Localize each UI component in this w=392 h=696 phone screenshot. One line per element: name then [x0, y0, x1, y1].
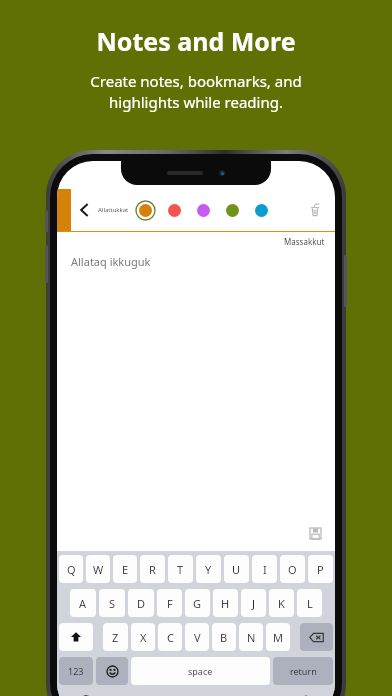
- staticText: D: [137, 596, 146, 611]
- staticText: N: [247, 630, 256, 645]
- staticText: F: [167, 596, 173, 611]
- button[interactable]: L: [297, 589, 322, 617]
- staticText: W: [93, 562, 104, 577]
- button[interactable]: T: [168, 555, 193, 583]
- staticText: B: [220, 630, 228, 645]
- button[interactable]: A: [70, 589, 96, 617]
- button[interactable]: Colour 2: [163, 199, 185, 221]
- staticText: S: [109, 596, 116, 611]
- button[interactable]: G: [185, 589, 210, 617]
- staticText: U: [232, 562, 241, 577]
- button[interactable]: Emoji: [96, 657, 128, 685]
- button[interactable]: return: [273, 657, 333, 685]
- button[interactable]: E: [113, 555, 137, 583]
- button[interactable]: S: [99, 589, 125, 617]
- button[interactable]: Save: [305, 523, 325, 543]
- staticText: space: [188, 665, 213, 677]
- button[interactable]: K: [269, 589, 294, 617]
- button[interactable]: U: [224, 555, 249, 583]
- button[interactable]: Allattukkat: [98, 206, 129, 214]
- button[interactable]: Y: [196, 555, 221, 583]
- staticText: E: [122, 562, 129, 577]
- staticText: L: [307, 596, 313, 611]
- button[interactable]: R: [140, 555, 165, 583]
- button[interactable]: X: [131, 623, 155, 651]
- staticText: J: [252, 596, 256, 611]
- staticText: K: [278, 596, 285, 611]
- button[interactable]: D: [128, 589, 154, 617]
- button[interactable]: Backspace: [300, 623, 333, 651]
- staticText: T: [177, 562, 184, 577]
- staticText: Y: [205, 562, 212, 577]
- staticText: G: [193, 596, 202, 611]
- button[interactable]: N: [239, 623, 263, 651]
- button[interactable]: M: [266, 623, 290, 651]
- button[interactable]: Back: [75, 200, 95, 220]
- button[interactable]: Colour 1: [134, 199, 156, 221]
- button[interactable]: space: [131, 657, 270, 685]
- button[interactable]: Colour 3: [192, 199, 214, 221]
- button[interactable]: H: [213, 589, 238, 617]
- staticText: H: [221, 596, 230, 611]
- button[interactable]: Dictate: [295, 691, 317, 696]
- button[interactable]: P: [308, 555, 333, 583]
- staticText: Massakkut: [284, 236, 325, 247]
- staticText: O: [288, 562, 297, 577]
- staticText: R: [149, 562, 156, 577]
- button[interactable]: C: [158, 623, 182, 651]
- button[interactable]: J: [241, 589, 266, 617]
- staticText: 123: [68, 665, 84, 677]
- staticText: Allataq ikkuguk: [71, 254, 151, 269]
- button[interactable]: V: [185, 623, 209, 651]
- staticText: Notes and More: [96, 24, 296, 58]
- button[interactable]: Colour 4: [221, 199, 243, 221]
- button[interactable]: Z: [103, 623, 128, 651]
- button[interactable]: Colour 5: [250, 199, 272, 221]
- button[interactable]: 123: [59, 657, 93, 685]
- staticText: A: [79, 596, 87, 611]
- staticText: M: [273, 630, 283, 645]
- staticText: I: [263, 562, 267, 577]
- button[interactable]: Delete: [303, 198, 327, 222]
- staticText: Q: [67, 562, 76, 577]
- staticText: C: [167, 630, 174, 645]
- staticText: X: [140, 630, 147, 645]
- staticText: Create notes, bookmarks, and highlights …: [90, 71, 302, 113]
- staticText: Z: [112, 630, 119, 645]
- staticText: P: [317, 562, 324, 577]
- button[interactable]: Q: [59, 555, 83, 583]
- button[interactable]: I: [252, 555, 277, 583]
- button[interactable]: Change keyboard: [75, 691, 97, 696]
- button[interactable]: F: [157, 589, 182, 617]
- staticText: return: [290, 665, 317, 677]
- staticText: V: [194, 630, 201, 645]
- button[interactable]: Shift: [59, 623, 93, 651]
- button[interactable]: B: [212, 623, 236, 651]
- button[interactable]: W: [86, 555, 110, 583]
- button[interactable]: O: [280, 555, 305, 583]
